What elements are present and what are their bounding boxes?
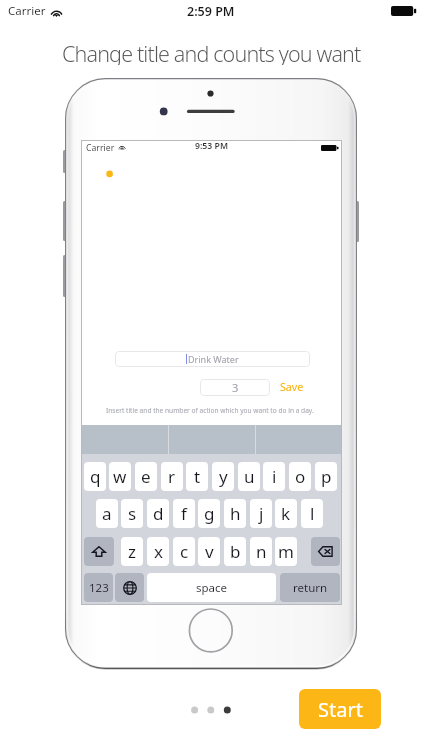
button[interactable]: n [250,537,272,566]
staticText: f [181,502,187,525]
staticText: b [230,540,241,563]
staticText: g [204,502,215,525]
staticText: v [205,540,214,563]
staticText: q [90,465,101,488]
staticText: 2:59 PM [187,3,235,20]
staticText: p [321,465,332,488]
button[interactable]: l [301,499,323,528]
staticText: Carrier [8,3,46,19]
button[interactable]: Start [299,689,381,729]
staticText: r [168,465,176,488]
button[interactable]: o [289,462,311,491]
button[interactable]: 3 [200,379,270,396]
button[interactable]: r [161,462,183,491]
staticText: l [310,502,315,525]
button[interactable]: Drink Water [115,351,310,367]
staticText: return [293,580,328,596]
button[interactable]: x [147,537,169,566]
staticText: Insert title and the number of action wh… [106,406,314,415]
staticText: y [219,465,228,488]
button[interactable]: k [275,499,297,528]
staticText: u [244,465,255,488]
button[interactable]: v [198,537,220,566]
staticText: space [196,580,228,596]
button[interactable]: Change keyboard language [115,573,144,602]
button[interactable]: Shift [84,537,114,566]
staticText: Start [318,696,363,723]
button[interactable]: b [224,537,246,566]
staticText: j [259,502,264,525]
button[interactable]: e [135,462,157,491]
button[interactable]: d [147,499,169,528]
staticText: k [281,502,291,525]
staticText: x [154,540,163,563]
staticText: d [153,502,164,525]
button[interactable]: h [224,499,246,528]
staticText: o [295,465,306,488]
staticText: s [128,502,137,525]
staticText: Drink Water [188,353,239,365]
staticText: 9:53 PM [195,140,228,152]
button[interactable]: w [109,462,131,491]
button[interactable]: Backspace [311,537,340,566]
staticText: Save [280,380,304,395]
button[interactable]: i [263,462,285,491]
button[interactable]: s [121,499,143,528]
staticText: 123 [89,580,109,596]
staticText: a [102,502,112,525]
staticText: n [256,540,267,563]
button[interactable]: j [250,499,272,528]
button[interactable]: m [275,537,297,566]
button[interactable]: u [238,462,260,491]
button[interactable]: t [186,462,208,491]
staticText: e [141,465,151,488]
staticText: c [180,540,189,563]
button[interactable]: space [147,573,276,602]
button[interactable]: a [96,499,118,528]
staticText: z [128,540,136,563]
staticText: i [272,465,277,488]
staticText: t [194,465,201,488]
staticText: h [230,502,241,525]
staticText: w [113,465,127,488]
button[interactable]: 123 [84,573,113,602]
staticText: Change title and counts you want [62,39,361,65]
button[interactable]: p [315,462,337,491]
button[interactable]: z [121,537,143,566]
button[interactable]: f [173,499,195,528]
button[interactable]: q [84,462,106,491]
staticText: 3 [232,380,239,395]
button[interactable]: y [212,462,234,491]
button[interactable]: g [198,499,220,528]
button[interactable]: Save [273,379,311,396]
button[interactable]: c [173,537,195,566]
staticText: Carrier [86,142,115,154]
staticText: m [278,540,294,563]
button[interactable]: return [280,573,340,602]
